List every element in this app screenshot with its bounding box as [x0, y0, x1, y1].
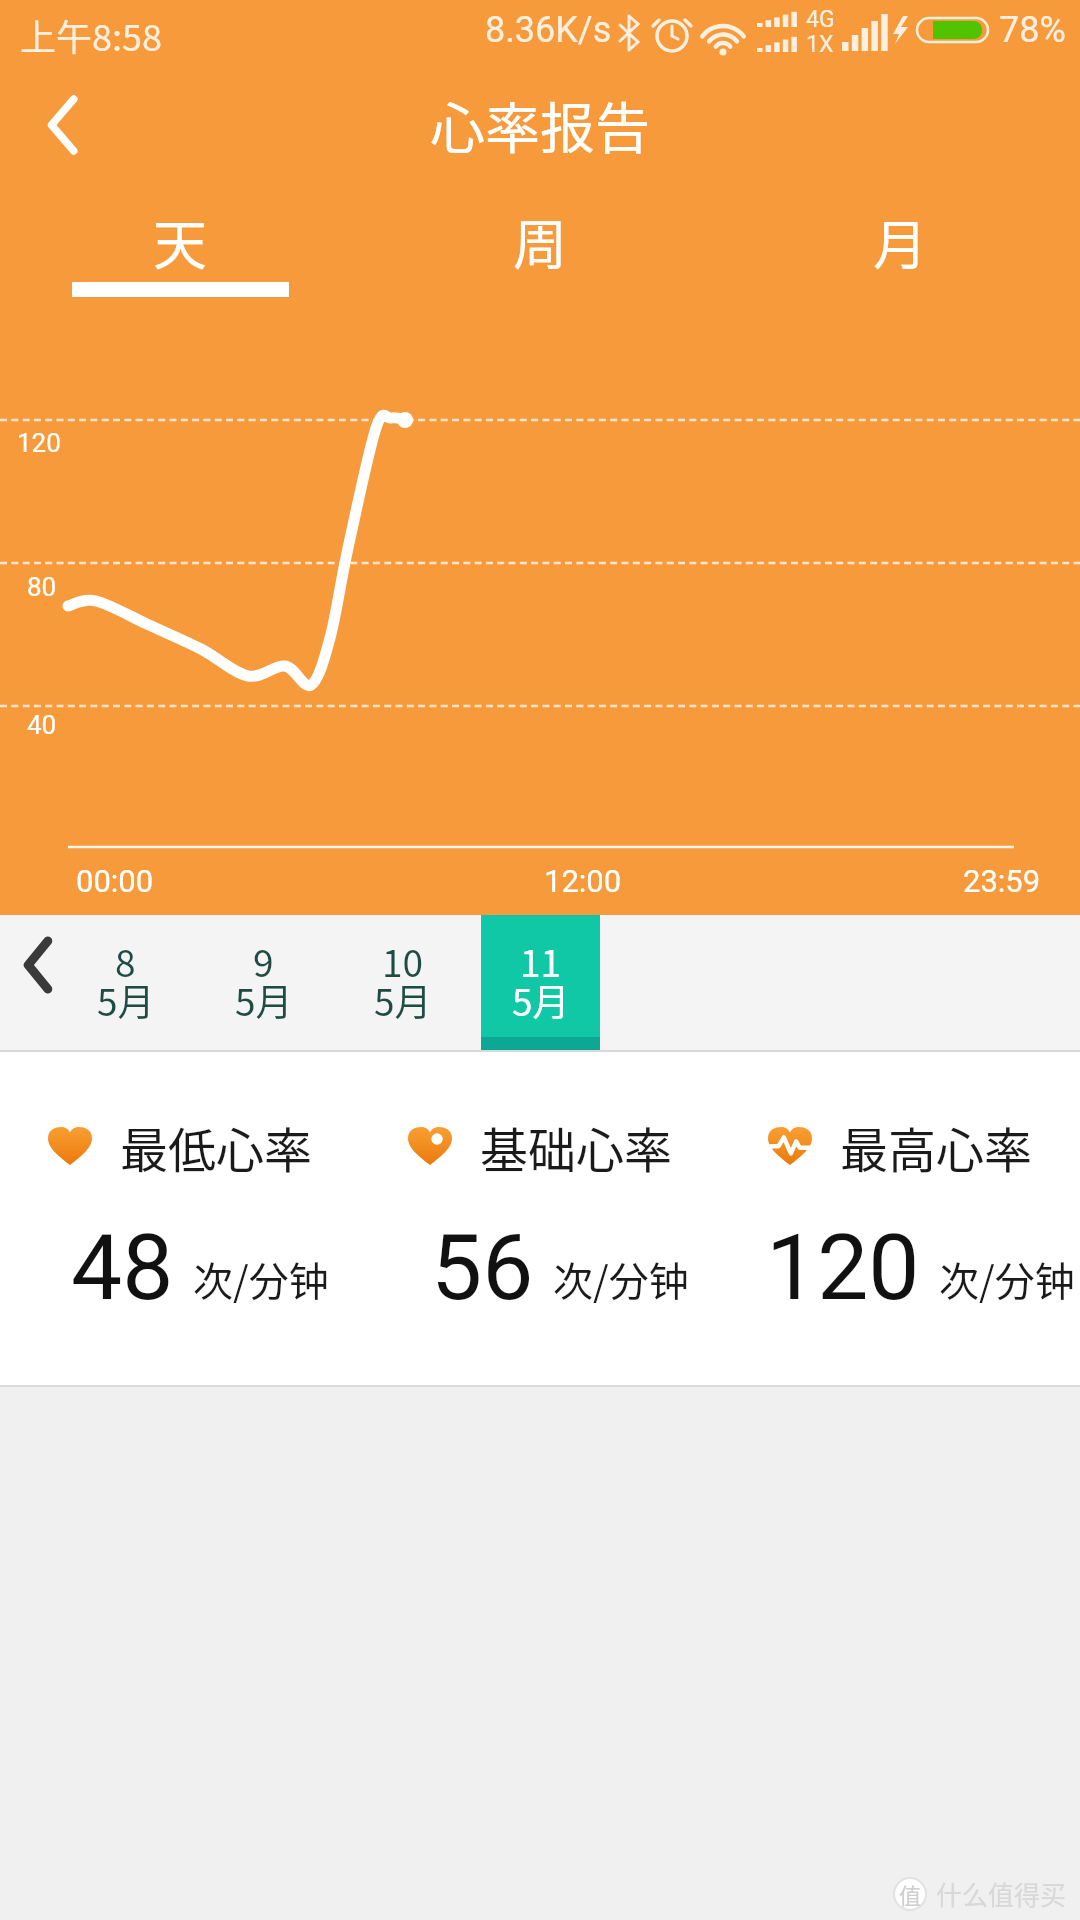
button[interactable]: 周 — [360, 202, 720, 280]
staticText: 月 — [873, 202, 927, 280]
staticText: 心率报告 — [430, 84, 651, 164]
staticText: 78% — [999, 9, 1066, 51]
staticText: 00:00 — [76, 863, 154, 899]
staticText: 基础心率 — [480, 1112, 673, 1182]
staticText: 次/分钟 — [553, 1250, 689, 1308]
staticText: 120 — [766, 1215, 920, 1322]
button[interactable]: 月 — [720, 202, 1080, 280]
staticText: 5月 — [374, 973, 432, 1027]
staticText: 23:59 — [963, 863, 1041, 899]
button[interactable] — [8, 925, 68, 1005]
staticText: 1X — [806, 31, 834, 58]
staticText: 周 — [513, 202, 567, 280]
staticText: 40 — [27, 710, 57, 740]
staticText: 120 — [17, 428, 61, 458]
staticText: 次/分钟 — [193, 1250, 329, 1308]
staticText: 天 — [153, 202, 207, 280]
staticText: 值 — [899, 1878, 922, 1910]
button[interactable]: 10 — [343, 915, 462, 1052]
staticText: 80 — [27, 572, 57, 602]
button[interactable]: 天 — [0, 202, 360, 280]
staticText: 10 — [382, 934, 424, 988]
button[interactable] — [18, 80, 108, 170]
staticText: 次/分钟 — [939, 1250, 1075, 1308]
staticText: 48 — [71, 1215, 174, 1322]
staticText: 5月 — [97, 973, 155, 1027]
staticText: 5月 — [235, 973, 293, 1027]
staticText: 8 — [115, 934, 136, 988]
button[interactable]: 8 — [66, 915, 185, 1052]
staticText: 什么值得买 — [936, 1875, 1067, 1913]
button[interactable]: 9 — [204, 915, 323, 1052]
staticText: 56 — [431, 1215, 534, 1322]
staticText: 9 — [253, 934, 274, 988]
button[interactable]: 11 — [481, 915, 600, 1052]
staticText: 最高心率 — [840, 1112, 1033, 1182]
staticText: 11 — [520, 934, 562, 988]
staticText: 4G — [806, 6, 835, 33]
staticText: 上午8:58 — [20, 9, 162, 61]
staticText: 最低心率 — [120, 1112, 313, 1182]
staticText: 8.36K/s — [485, 9, 612, 51]
staticText: 12:00 — [544, 863, 622, 899]
staticText: 5月 — [512, 973, 570, 1027]
